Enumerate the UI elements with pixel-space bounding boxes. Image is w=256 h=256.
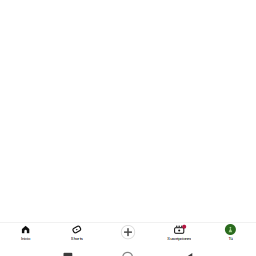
button[interactable]: Shorts: [51, 223, 102, 241]
button[interactable]: Tú: [205, 223, 256, 241]
button[interactable]: Inicio: [0, 223, 51, 241]
staticText: Tú: [228, 236, 232, 241]
staticText: Suscripciones: [167, 236, 191, 241]
button[interactable]: Crear: [102, 223, 154, 241]
staticText: Inicio: [21, 236, 30, 241]
button[interactable]: Inicio del sistema: [123, 252, 132, 256]
staticText: Shorts: [71, 236, 83, 241]
button[interactable]: Suscripciones: [154, 223, 205, 241]
button[interactable]: Atrás: [186, 253, 192, 256]
